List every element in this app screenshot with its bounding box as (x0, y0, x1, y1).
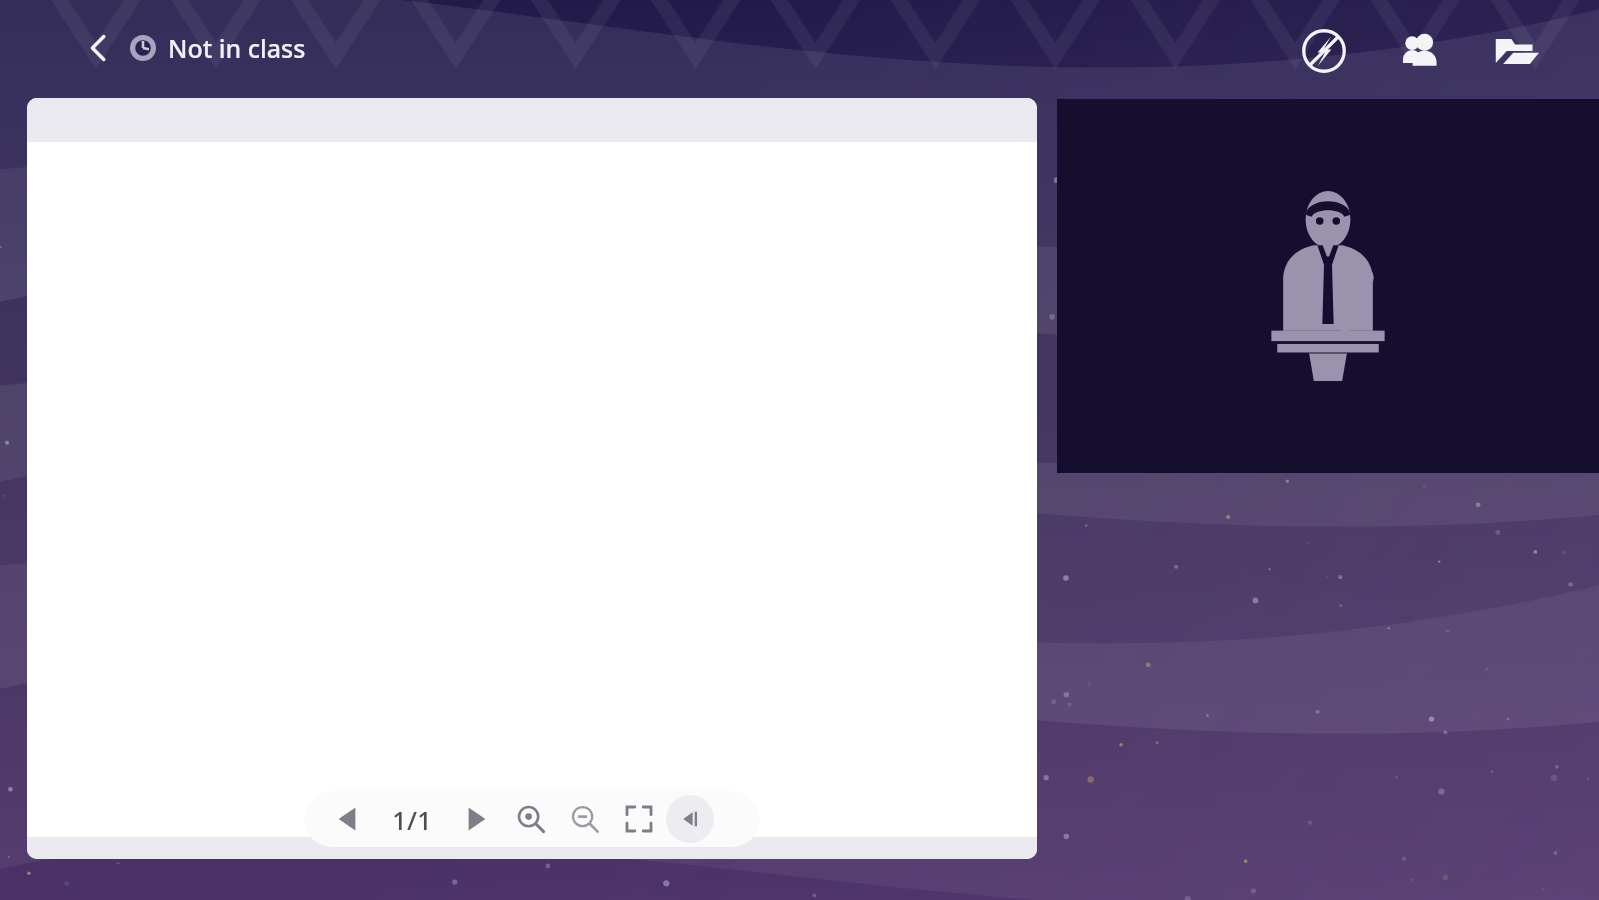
button[interactable]: Zoom in (504, 795, 558, 843)
button[interactable]: Collapse (666, 795, 714, 843)
button[interactable]: Fullscreen (612, 795, 666, 843)
button[interactable]: Previous page (320, 795, 374, 843)
button[interactable]: Next page (450, 795, 504, 843)
button[interactable]: Presenter video (1057, 99, 1599, 473)
button[interactable]: Participants (1391, 22, 1449, 80)
other: Back (84, 26, 114, 70)
button[interactable]: Zoom out (558, 795, 612, 843)
staticText: Not in class (168, 31, 306, 65)
button[interactable]: Files (1487, 22, 1545, 80)
staticText: 1/1 (392, 802, 432, 837)
button[interactable]: Energy (1295, 22, 1353, 80)
button[interactable]: Back (84, 26, 306, 70)
button[interactable]: 1/1 (374, 795, 450, 843)
